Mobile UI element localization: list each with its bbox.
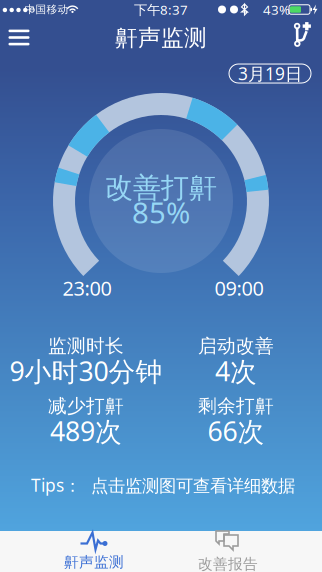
staticText: 85% [132,192,190,231]
button[interactable]: 改善报告 [161,526,295,572]
staticText: 鼾声监测 [64,553,124,571]
staticText: 鼾声监测 [115,24,207,52]
button[interactable]: Menu [0,15,41,59]
staticText: 减少打鼾 [48,394,124,417]
staticText: 9小时30分钟 [9,353,162,389]
staticText: Tips： 点击监测图可查看详细数据 [31,473,295,496]
staticText: 09:00 [214,275,263,301]
staticText: 43% [263,1,290,18]
staticText: 23:00 [62,275,111,301]
staticText: 启动改善 [198,334,274,357]
staticText: 改善报告 [198,555,258,572]
button[interactable]: 3月19日 [229,64,311,83]
staticText: 改善打鼾 [105,171,217,205]
staticText: 4次 [215,353,257,389]
staticText: 剩余打鼾 [198,394,274,417]
button[interactable]: 鼾声监测 [27,528,161,572]
staticText: 66次 [207,413,264,449]
button[interactable]: Add device [281,12,322,56]
staticText: 中国移动 [24,3,68,16]
staticText: 监测时长 [48,334,124,357]
staticText: 3月19日 [238,62,302,85]
staticText: 下午8:37 [134,1,188,18]
staticText: 489次 [50,413,122,449]
